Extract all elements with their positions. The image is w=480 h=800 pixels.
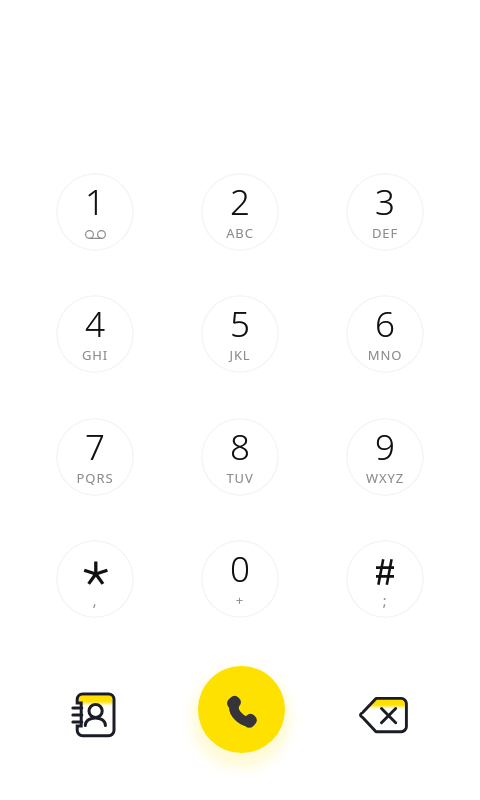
button[interactable]: 9 xyxy=(346,418,424,496)
staticText: 1 xyxy=(56,178,134,226)
staticText: + xyxy=(201,591,279,609)
staticText: JKL xyxy=(201,346,279,364)
button[interactable]: 2 xyxy=(201,173,279,251)
staticText: 7 xyxy=(56,423,134,471)
staticText: 8 xyxy=(201,423,279,471)
staticText: , xyxy=(56,591,134,610)
button[interactable]: Backspace xyxy=(345,673,423,751)
staticText: 5 xyxy=(201,300,279,348)
button[interactable]: , xyxy=(56,540,134,618)
staticText: 2 xyxy=(201,178,279,226)
staticText: MNO xyxy=(346,346,424,364)
staticText: 0 xyxy=(201,545,279,593)
staticText: WXYZ xyxy=(346,469,424,487)
staticText: 2 xyxy=(201,178,279,226)
staticText: 9 xyxy=(346,423,424,471)
staticText: GHI xyxy=(56,346,134,364)
button[interactable]: 8 xyxy=(201,418,279,496)
button[interactable]: 6 xyxy=(346,295,424,373)
staticText: 0 xyxy=(201,545,279,593)
button[interactable]: 5 xyxy=(201,295,279,373)
button[interactable]: 1 xyxy=(56,173,134,251)
staticText: ABC xyxy=(201,224,279,242)
staticText: 8 xyxy=(201,423,279,471)
staticText: 5 xyxy=(201,300,279,348)
staticText: PQRS xyxy=(56,469,134,487)
button[interactable]: ; xyxy=(346,540,424,618)
staticText: 6 xyxy=(346,300,424,348)
button[interactable]: 3 xyxy=(346,173,424,251)
staticText: 4 xyxy=(56,300,134,348)
button[interactable]: 4 xyxy=(56,295,134,373)
staticText: 7 xyxy=(56,423,134,471)
staticText: 3 xyxy=(346,178,424,226)
staticText: 6 xyxy=(346,300,424,348)
button[interactable]: 7 xyxy=(56,418,134,496)
staticText: 4 xyxy=(56,300,134,348)
button[interactable]: Contacts xyxy=(56,673,134,751)
staticText: DEF xyxy=(346,224,424,242)
staticText: 3 xyxy=(346,178,424,226)
staticText: 9 xyxy=(346,423,424,471)
staticText: ; xyxy=(346,591,424,610)
button[interactable]: 0 xyxy=(201,540,279,618)
staticText: 1 xyxy=(56,178,134,226)
staticText: TUV xyxy=(201,469,279,487)
button[interactable]: Call xyxy=(198,666,285,753)
